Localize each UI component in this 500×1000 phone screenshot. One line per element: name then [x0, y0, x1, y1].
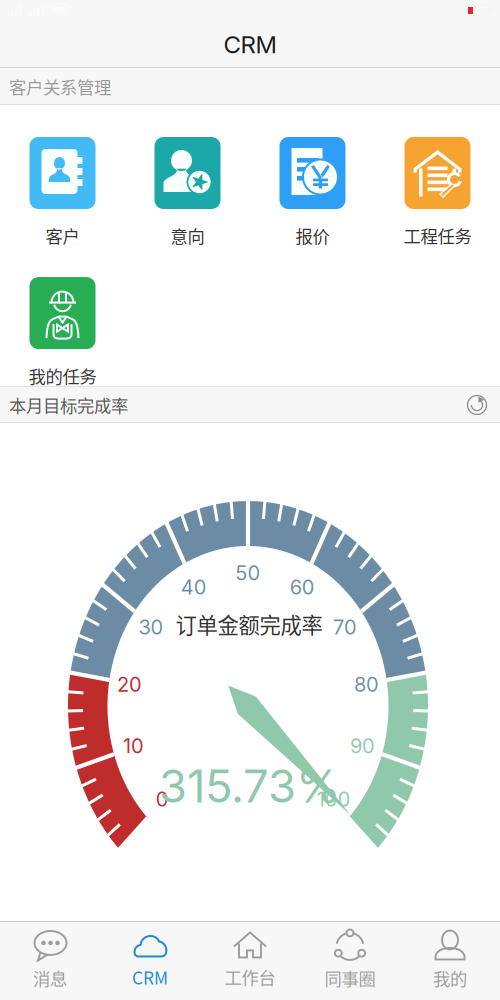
- button[interactable]: 客户: [0, 137, 125, 248]
- staticText: 40: [181, 575, 207, 599]
- staticText: 工作台: [224, 964, 275, 990]
- button[interactable]: 意向: [125, 137, 250, 248]
- button[interactable]: 我的任务: [0, 277, 125, 388]
- staticText: CRM: [223, 30, 276, 59]
- staticText: 客户: [45, 223, 79, 248]
- staticText: 客户关系管理: [9, 74, 111, 99]
- button[interactable]: 工程任务: [375, 137, 500, 248]
- staticText: 我的任务: [28, 363, 96, 388]
- staticText: 100: [317, 787, 351, 811]
- button[interactable]: CRM: [100, 923, 200, 998]
- staticText: 消息: [33, 965, 67, 991]
- staticText: 意向: [170, 223, 204, 248]
- staticText: 30: [139, 615, 164, 639]
- staticText: 订单金额完成率: [175, 609, 322, 639]
- staticText: 50: [235, 561, 260, 585]
- staticText: 90: [350, 734, 375, 758]
- staticText: 10: [123, 734, 144, 758]
- staticText: 60: [290, 575, 315, 599]
- staticText: 315.73%: [159, 759, 341, 813]
- button[interactable]: 同事圈: [300, 922, 400, 999]
- staticText: 本月目标完成率: [9, 392, 128, 418]
- button[interactable]: 工作台: [200, 923, 300, 998]
- staticText: 报价: [295, 223, 329, 248]
- staticText: 80: [354, 672, 379, 696]
- button[interactable]: 我的: [400, 922, 500, 999]
- staticText: 20: [117, 672, 142, 696]
- staticText: 70: [333, 615, 357, 639]
- button[interactable]: Refresh: [466, 394, 488, 416]
- button[interactable]: 消息: [0, 922, 100, 999]
- staticText: CRM: [132, 964, 168, 990]
- button[interactable]: 报价: [250, 137, 375, 248]
- staticText: 工程任务: [403, 223, 471, 248]
- staticText: 0: [156, 787, 169, 811]
- staticText: 我的: [433, 965, 467, 991]
- staticText: 同事圈: [324, 965, 375, 991]
